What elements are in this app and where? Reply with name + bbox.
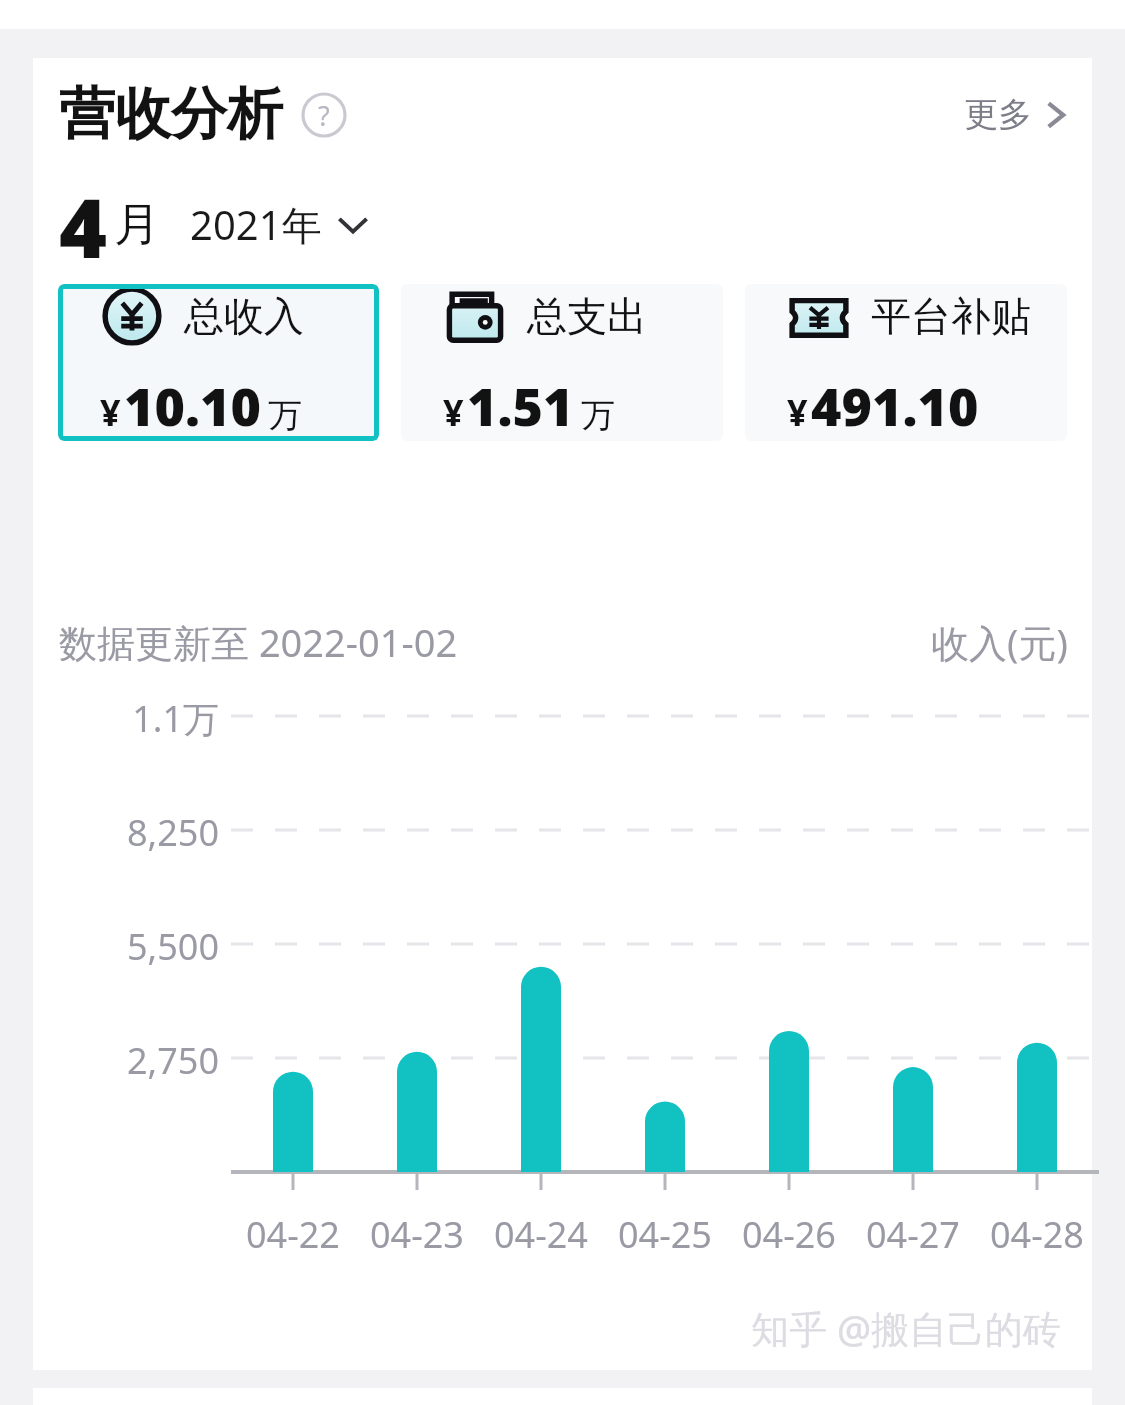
staticText: 总收入	[184, 291, 304, 341]
staticText: 1.1万	[91, 694, 219, 743]
button[interactable]: 平台补贴	[745, 284, 1067, 441]
button[interactable]: 更多	[964, 93, 1070, 136]
staticText: 5,500	[91, 922, 219, 971]
button[interactable]: 总支出	[401, 284, 723, 441]
staticText: 491.10	[811, 370, 979, 441]
staticText: 04-23	[370, 1210, 464, 1259]
staticText: 营收分析	[59, 79, 283, 150]
staticText: 收入(元)	[931, 616, 1068, 668]
staticText: 04-22	[246, 1210, 340, 1259]
button[interactable]: 2021年	[190, 197, 370, 252]
button[interactable]: 帮助说明	[301, 92, 347, 138]
staticText: ¥	[100, 388, 121, 437]
staticText: 平台补贴	[871, 291, 1031, 341]
staticText: 2,750	[91, 1036, 219, 1085]
staticText: 更多	[964, 93, 1032, 136]
button[interactable]: 总收入	[58, 284, 379, 441]
staticText: ¥	[443, 388, 464, 437]
staticText: 04-26	[742, 1210, 836, 1259]
staticText: ¥	[787, 388, 808, 437]
staticText: 总支出	[527, 291, 647, 341]
staticText: 知乎 @搬自己的砖	[751, 1302, 1062, 1354]
staticText: 04-24	[494, 1210, 588, 1259]
staticText: 2021年	[190, 197, 322, 252]
staticText: 10.10	[124, 370, 261, 441]
staticText: 4	[59, 170, 108, 260]
staticText: 万	[268, 394, 302, 437]
staticText: 1.51	[467, 370, 574, 441]
staticText: 万	[581, 394, 615, 437]
staticText: 04-27	[866, 1210, 960, 1259]
staticText: 数据更新至 2022-01-02	[59, 616, 458, 668]
staticText: 04-25	[618, 1210, 712, 1259]
staticText: ?	[318, 97, 330, 134]
staticText: 月	[114, 196, 160, 254]
staticText: 8,250	[91, 808, 219, 857]
staticText: 04-28	[990, 1210, 1084, 1259]
